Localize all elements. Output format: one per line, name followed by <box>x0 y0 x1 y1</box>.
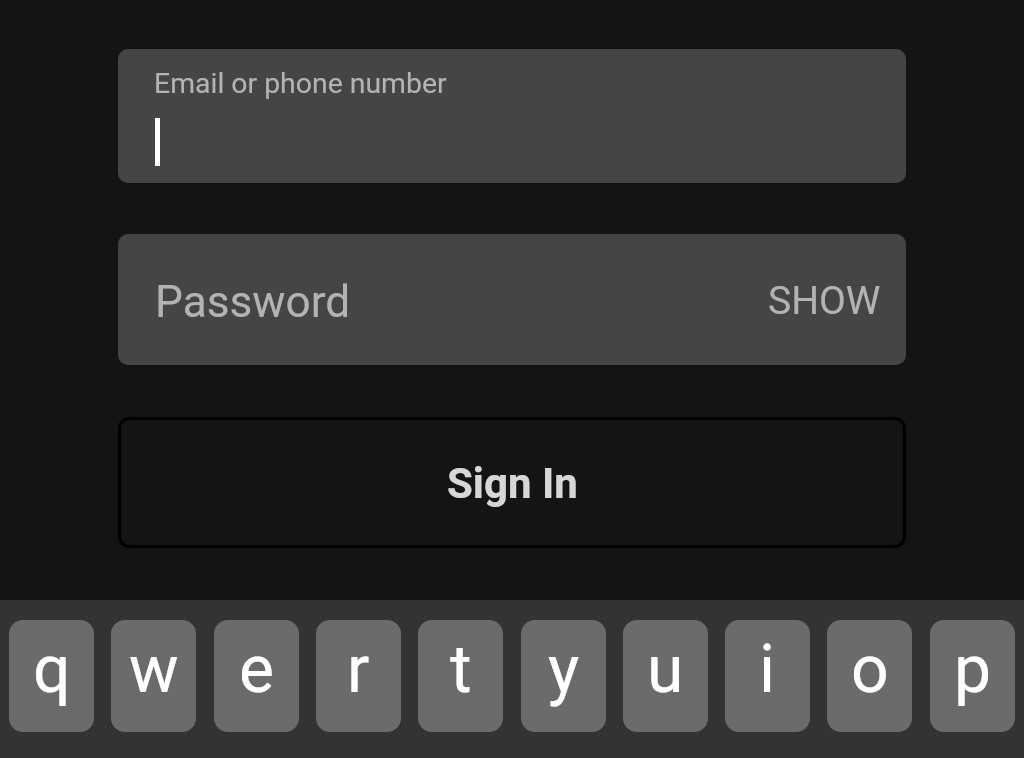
button[interactable]: Sign In <box>118 417 906 548</box>
button[interactable]: Email or phone number <box>118 49 906 183</box>
staticText: r <box>347 631 370 708</box>
button[interactable]: t <box>418 620 503 732</box>
button[interactable]: SHOW <box>768 278 881 324</box>
staticText: u <box>647 631 684 708</box>
staticText: Sign In <box>447 459 578 508</box>
button[interactable]: q <box>9 620 94 732</box>
button[interactable]: Password <box>118 234 906 365</box>
staticText: Password <box>155 276 351 328</box>
staticText: q <box>33 631 71 708</box>
button[interactable]: r <box>316 620 401 732</box>
button[interactable]: u <box>623 620 708 732</box>
staticText: Email or phone number <box>154 67 447 100</box>
button[interactable]: o <box>827 620 912 732</box>
staticText: t <box>450 631 472 708</box>
staticText: w <box>129 631 179 708</box>
staticText: o <box>851 631 889 708</box>
staticText: y <box>548 631 580 708</box>
button[interactable]: w <box>111 620 196 732</box>
staticText: i <box>759 631 776 708</box>
button[interactable]: i <box>725 620 810 732</box>
button[interactable]: p <box>930 620 1015 732</box>
staticText: e <box>239 631 274 708</box>
other: Keyboard <box>0 600 1024 758</box>
button[interactable]: e <box>214 620 299 732</box>
button[interactable]: y <box>521 620 606 732</box>
staticText: p <box>954 631 992 708</box>
staticText: SHOW <box>768 278 881 324</box>
